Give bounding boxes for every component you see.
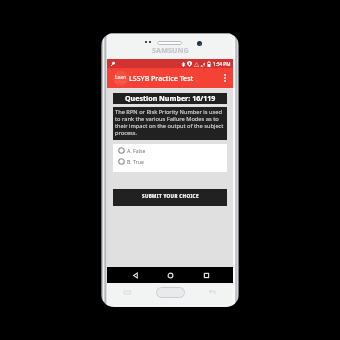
staticText: The RPN or Risk Priority Number is used … <box>115 108 225 137</box>
staticText: SixSigma <box>115 80 127 84</box>
button[interactable]: SUBMIT YOUR CHOICE <box>113 189 227 206</box>
button[interactable]: A. False <box>118 147 227 154</box>
button[interactable]: Recents <box>198 267 214 283</box>
staticText: 1:54 PM <box>213 61 231 67</box>
staticText: A. False <box>127 147 146 154</box>
button[interactable]: B. True <box>118 158 227 165</box>
button[interactable]: Home <box>162 267 178 283</box>
staticText: Question Number: 16/119 <box>125 93 216 103</box>
staticText: SAMSUNG <box>152 45 189 55</box>
button[interactable]: Back <box>127 267 143 283</box>
button[interactable]: More options <box>220 70 229 86</box>
staticText: SUBMIT YOUR CHOICE <box>142 193 199 199</box>
staticText: B. True <box>127 158 144 165</box>
staticText: Lean <box>115 74 127 80</box>
staticText: LSSYB Practice Test <box>129 73 194 83</box>
